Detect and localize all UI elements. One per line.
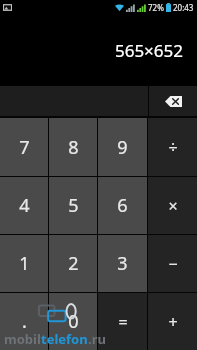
staticText: ÷ xyxy=(168,136,178,158)
staticText: telefon xyxy=(41,330,88,348)
staticText: 20:43 xyxy=(173,2,194,13)
staticText: 6 xyxy=(117,193,128,218)
staticText: = xyxy=(118,311,128,333)
staticText: + xyxy=(168,311,178,333)
button[interactable]: × xyxy=(148,177,197,234)
staticText: 8 xyxy=(68,135,79,160)
button[interactable]: 1 xyxy=(0,235,48,292)
button[interactable]: 0 xyxy=(49,293,97,350)
staticText: . xyxy=(22,309,27,334)
button[interactable]: ÷ xyxy=(148,118,197,176)
staticText: 7 xyxy=(19,135,30,160)
staticText: 2 xyxy=(68,251,79,276)
button[interactable]: 4 xyxy=(0,177,48,234)
button[interactable]: Backspace xyxy=(149,86,197,116)
button[interactable]: . xyxy=(0,293,48,350)
staticText: 3 xyxy=(117,251,128,276)
staticText: 565×652 xyxy=(114,39,183,62)
staticText: 5 xyxy=(68,193,79,218)
staticText: .ru xyxy=(88,330,106,348)
staticText: 0 xyxy=(68,309,79,334)
button[interactable]: 7 xyxy=(0,118,48,176)
staticText: 9 xyxy=(117,135,128,160)
button[interactable]: 8 xyxy=(49,118,97,176)
staticText: − xyxy=(168,253,178,275)
staticText: 4 xyxy=(19,193,30,218)
button[interactable]: = xyxy=(98,293,147,350)
button[interactable]: 2 xyxy=(49,235,97,292)
staticText: 72% xyxy=(148,2,164,13)
staticText: × xyxy=(168,195,178,217)
button[interactable]: 6 xyxy=(98,177,147,234)
button[interactable]: 9 xyxy=(98,118,147,176)
staticText: 1 xyxy=(19,251,30,276)
button[interactable]: 3 xyxy=(98,235,147,292)
button[interactable]: − xyxy=(148,235,197,292)
button[interactable]: 5 xyxy=(49,177,97,234)
button[interactable]: + xyxy=(148,293,197,350)
staticText: mobil xyxy=(4,330,41,348)
